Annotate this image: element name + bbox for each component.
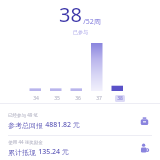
staticText: 已经参与 49 笔	[8, 112, 38, 118]
staticText: 36	[75, 95, 81, 102]
button[interactable]: 34	[0, 41, 160, 103]
staticText: 使用 44 张奖励金	[8, 139, 43, 145]
staticText: 34	[33, 95, 39, 102]
staticText: 38	[117, 95, 123, 102]
staticText: /52周	[83, 17, 101, 27]
staticText: 4881.82 元	[45, 120, 80, 130]
button[interactable]: 使用 44 张奖励金	[0, 136, 160, 160]
staticText: 135.24 元	[38, 147, 69, 157]
staticText: 35	[54, 95, 60, 102]
staticText: 参考总回报	[8, 121, 43, 130]
staticText: 38	[59, 1, 82, 28]
button[interactable]: Reward detail	[136, 140, 152, 156]
staticText: 累计抵现	[8, 148, 36, 157]
button[interactable]: Total return detail	[136, 113, 152, 129]
button[interactable]: 已经参与 49 笔	[0, 107, 160, 135]
staticText: 37	[96, 95, 102, 102]
staticText: 已参与	[73, 29, 88, 35]
